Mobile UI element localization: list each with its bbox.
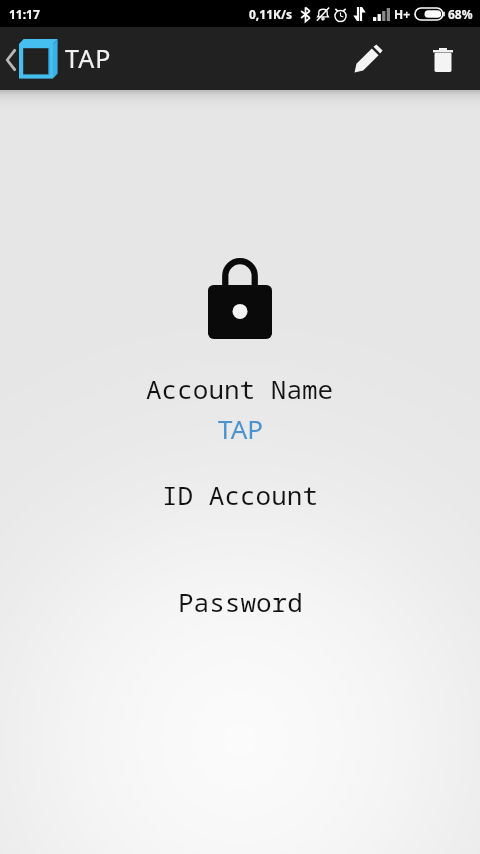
button[interactable]: Edit xyxy=(340,27,396,90)
button[interactable]: Delete xyxy=(415,27,471,90)
staticText: Account Name xyxy=(146,371,334,406)
staticText: H+ xyxy=(394,6,411,22)
staticText: ID Account xyxy=(162,477,319,512)
staticText: Password xyxy=(178,584,303,619)
staticText: 11:17 xyxy=(9,6,40,22)
staticText: TAP xyxy=(65,41,112,75)
button[interactable]: TAP xyxy=(200,410,280,446)
staticText: 0,11K/s xyxy=(249,6,292,22)
staticText: TAP xyxy=(218,411,263,446)
button[interactable]: Navigate up xyxy=(0,27,58,90)
staticText: 68% xyxy=(448,6,473,22)
